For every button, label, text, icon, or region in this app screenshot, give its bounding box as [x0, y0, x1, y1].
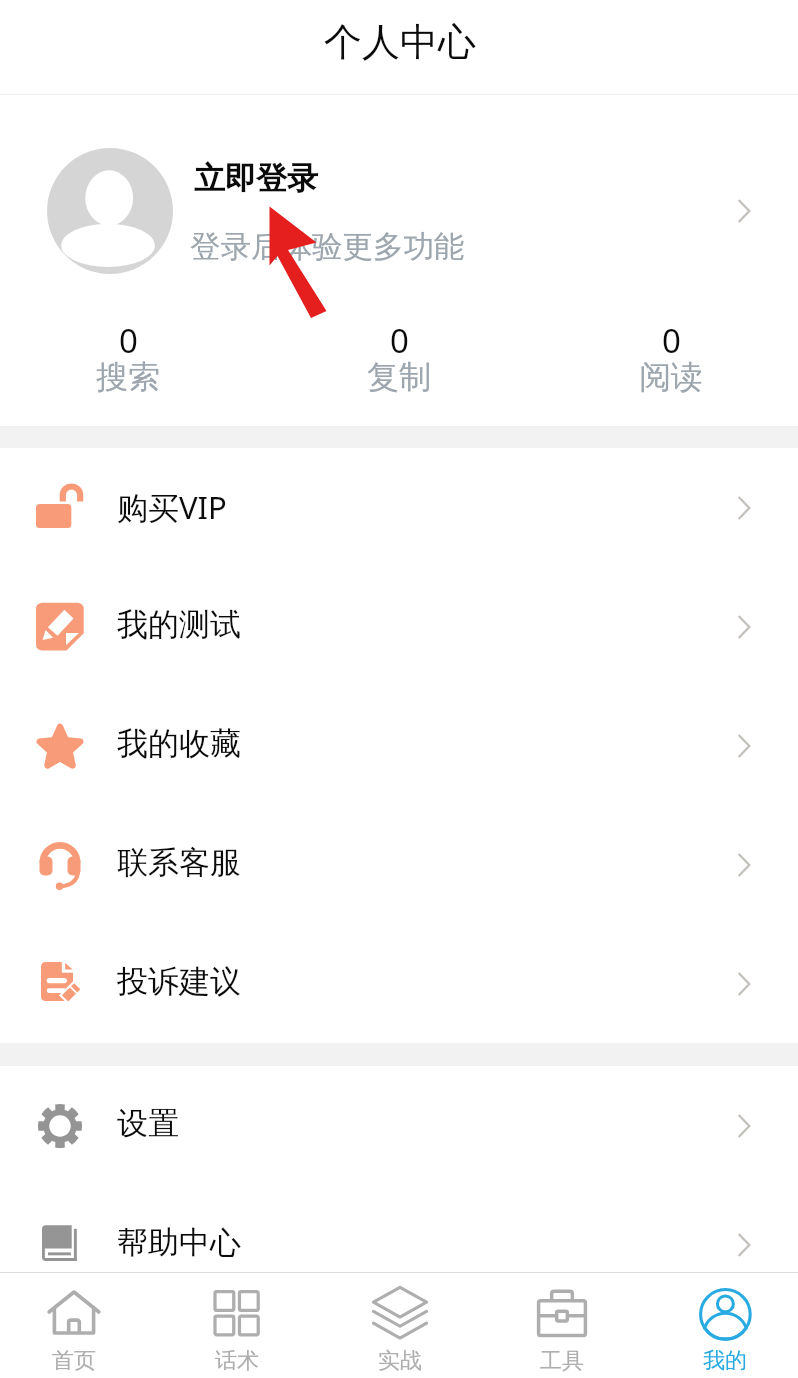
staticText: 0: [662, 318, 681, 363]
staticText: 投诉建议: [117, 962, 241, 1001]
staticText: 实战: [378, 1347, 422, 1375]
staticText: 购买VIP: [117, 486, 227, 528]
button[interactable]: Scripts: [177, 1273, 297, 1378]
button[interactable]: 购买VIP: [0, 448, 798, 567]
button[interactable]: Practice: [340, 1273, 460, 1378]
button[interactable]: Home: [14, 1273, 134, 1378]
staticText: 登录后体验更多功能: [190, 228, 465, 266]
staticText: 我的收藏: [117, 724, 241, 763]
staticText: 设置: [117, 1104, 179, 1143]
staticText: 个人中心: [324, 18, 476, 66]
staticText: 工具: [540, 1347, 584, 1375]
staticText: 0: [390, 318, 409, 363]
button[interactable]: 我的测试: [0, 567, 798, 686]
button[interactable]: 0: [611, 311, 731, 426]
staticText: 话术: [215, 1347, 259, 1375]
staticText: 联系客服: [117, 843, 241, 882]
staticText: 立即登录: [194, 159, 318, 198]
button[interactable]: 我的收藏: [0, 686, 798, 805]
button[interactable]: Profile: [665, 1273, 785, 1378]
button[interactable]: 联系客服: [0, 805, 798, 924]
staticText: 我的测试: [117, 605, 241, 644]
staticText: 0: [119, 318, 138, 363]
staticText: 首页: [52, 1347, 96, 1375]
button[interactable]: 0: [339, 311, 459, 426]
button[interactable]: 帮助中心: [0, 1185, 798, 1304]
staticText: 我的: [703, 1347, 747, 1375]
staticText: 帮助中心: [117, 1223, 241, 1262]
staticText: 搜索: [96, 357, 160, 397]
staticText: 复制: [367, 357, 431, 397]
button[interactable]: [0, 95, 798, 311]
button[interactable]: 0: [68, 311, 188, 426]
staticText: 阅读: [639, 357, 703, 397]
button[interactable]: Tools: [502, 1273, 622, 1378]
button[interactable]: 投诉建议: [0, 924, 798, 1043]
button[interactable]: 设置: [0, 1066, 798, 1185]
